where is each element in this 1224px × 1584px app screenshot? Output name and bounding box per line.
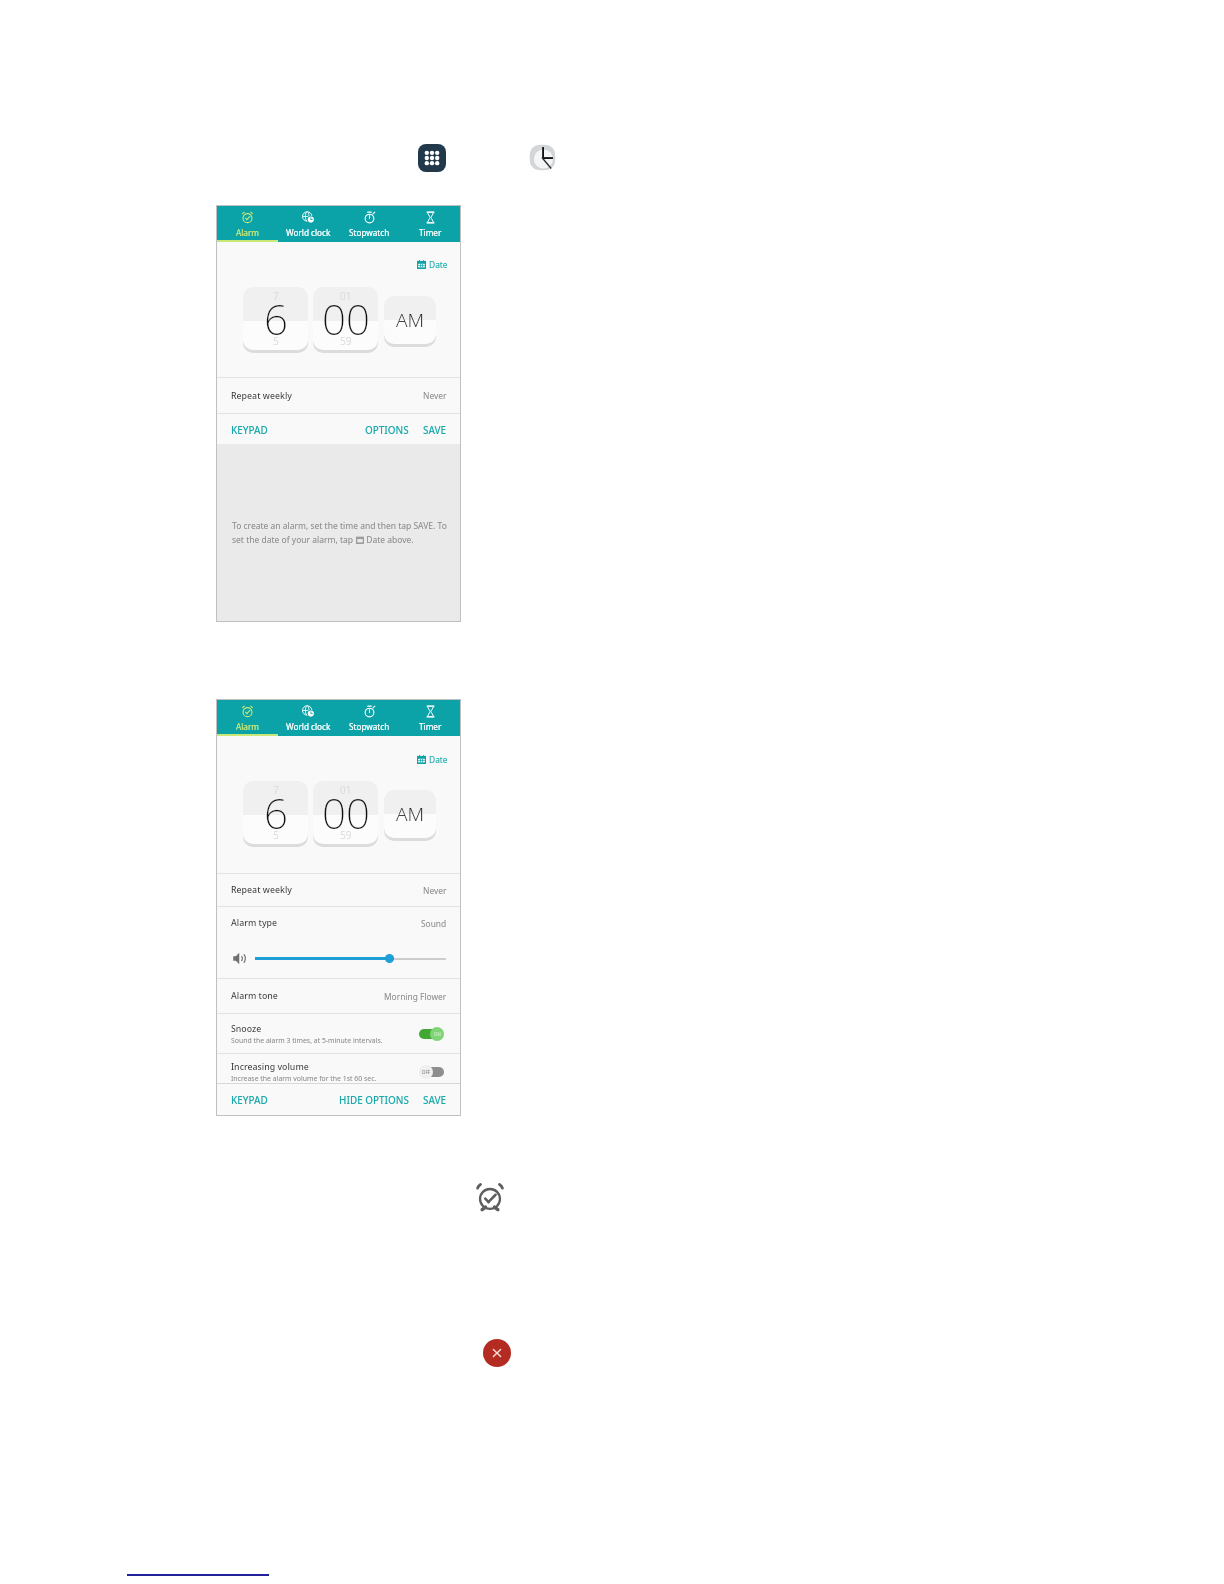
- button[interactable]: Stopwatch: [339, 205, 400, 242]
- staticText: 6: [264, 784, 288, 841]
- staticText: SAVE: [423, 1093, 447, 1106]
- staticText: 7: [273, 289, 279, 303]
- staticText: 01: [340, 783, 352, 797]
- staticText: HIDE OPTIONS: [339, 1093, 409, 1106]
- button[interactable]: Apps: [418, 144, 446, 172]
- button[interactable]: Repeat weekly: [216, 378, 461, 413]
- button[interactable]: Alarm: [476, 1183, 504, 1211]
- staticText: OFF: [422, 1069, 430, 1075]
- staticText: 00: [322, 290, 370, 347]
- staticText: 5: [273, 828, 279, 842]
- staticText: 5: [273, 334, 279, 348]
- staticText: set the date of your alarm, tap: [232, 534, 356, 546]
- button[interactable]: World clock: [278, 205, 339, 242]
- staticText: Timer: [419, 227, 442, 238]
- staticText: KEYPAD: [231, 423, 268, 436]
- button[interactable]: Snooze: [216, 1014, 461, 1053]
- staticText: Repeat weekly: [231, 390, 292, 402]
- staticText: Date: [429, 754, 448, 765]
- staticText: Never: [423, 885, 447, 896]
- staticText: Snooze: [231, 1023, 262, 1035]
- staticText: Never: [423, 390, 447, 401]
- button[interactable]: Stopwatch: [339, 699, 400, 736]
- button[interactable]: Switch off: [419, 1065, 444, 1079]
- button[interactable]: AM: [384, 790, 436, 838]
- staticText: World clock: [286, 721, 331, 732]
- button[interactable]: Repeat weekly: [216, 874, 461, 906]
- button[interactable]: Timer: [400, 205, 461, 242]
- button[interactable]: 01: [313, 781, 378, 844]
- button[interactable]: Close: [483, 1339, 511, 1367]
- staticText: World clock: [286, 227, 331, 238]
- staticText: KEYPAD: [231, 1093, 268, 1106]
- button[interactable]: KEYPAD: [216, 1093, 274, 1106]
- button[interactable]: SAVE: [415, 1093, 461, 1106]
- staticText: SAVE: [423, 423, 447, 436]
- button[interactable]: Timer: [400, 699, 461, 736]
- staticText: Alarm: [236, 721, 259, 732]
- button[interactable]: Date: [417, 259, 448, 270]
- staticText: Date above.: [364, 534, 414, 546]
- staticText: AM: [396, 307, 425, 333]
- staticText: 00: [322, 784, 370, 841]
- staticText: Alarm: [236, 227, 259, 238]
- staticText: Sound: [421, 918, 447, 929]
- button[interactable]: Increasing volume: [216, 1054, 461, 1090]
- staticText: Morning Flower: [384, 991, 447, 1002]
- button[interactable]: Clock: [528, 143, 557, 172]
- staticText: Date: [429, 259, 448, 270]
- staticText: Repeat weekly: [231, 884, 292, 896]
- staticText: Timer: [419, 721, 442, 732]
- staticText: 01: [340, 289, 352, 303]
- staticText: Alarm type: [231, 917, 278, 929]
- button[interactable]: Alarm: [216, 205, 278, 242]
- staticText: 7: [273, 783, 279, 797]
- button[interactable]: KEYPAD: [216, 423, 274, 436]
- button[interactable]: Alarm: [216, 699, 278, 736]
- staticText: Stopwatch: [349, 721, 390, 732]
- staticText: 59: [340, 828, 352, 842]
- button[interactable]: AM: [384, 296, 436, 344]
- staticText: Increase the alarm volume for the 1st 60…: [231, 1074, 377, 1083]
- button[interactable]: SAVE: [415, 423, 461, 436]
- staticText: AM: [396, 801, 425, 827]
- staticText: To create an alarm, set the time and the…: [232, 520, 447, 532]
- button[interactable]: 7: [243, 781, 308, 844]
- staticText: Sound the alarm 3 times, at 5-minute int…: [231, 1036, 383, 1045]
- button[interactable]: HIDE OPTIONS: [333, 1093, 415, 1106]
- staticText: Increasing volume: [231, 1061, 309, 1073]
- button[interactable]: Date: [417, 754, 448, 765]
- staticText: OPTIONS: [365, 423, 409, 436]
- button[interactable]: Alarm type: [216, 907, 461, 939]
- staticText: ON: [434, 1031, 441, 1037]
- staticText: Stopwatch: [349, 227, 390, 238]
- staticText: 59: [340, 334, 352, 348]
- button[interactable]: World clock: [278, 699, 339, 736]
- button[interactable]: 7: [243, 287, 308, 350]
- button[interactable]: Alarm tone: [216, 979, 461, 1013]
- staticText: Alarm tone: [231, 990, 278, 1002]
- button[interactable]: OPTIONS: [359, 423, 415, 436]
- button[interactable]: 01: [313, 287, 378, 350]
- button[interactable]: Switch on: [419, 1027, 444, 1041]
- staticText: 6: [264, 290, 288, 347]
